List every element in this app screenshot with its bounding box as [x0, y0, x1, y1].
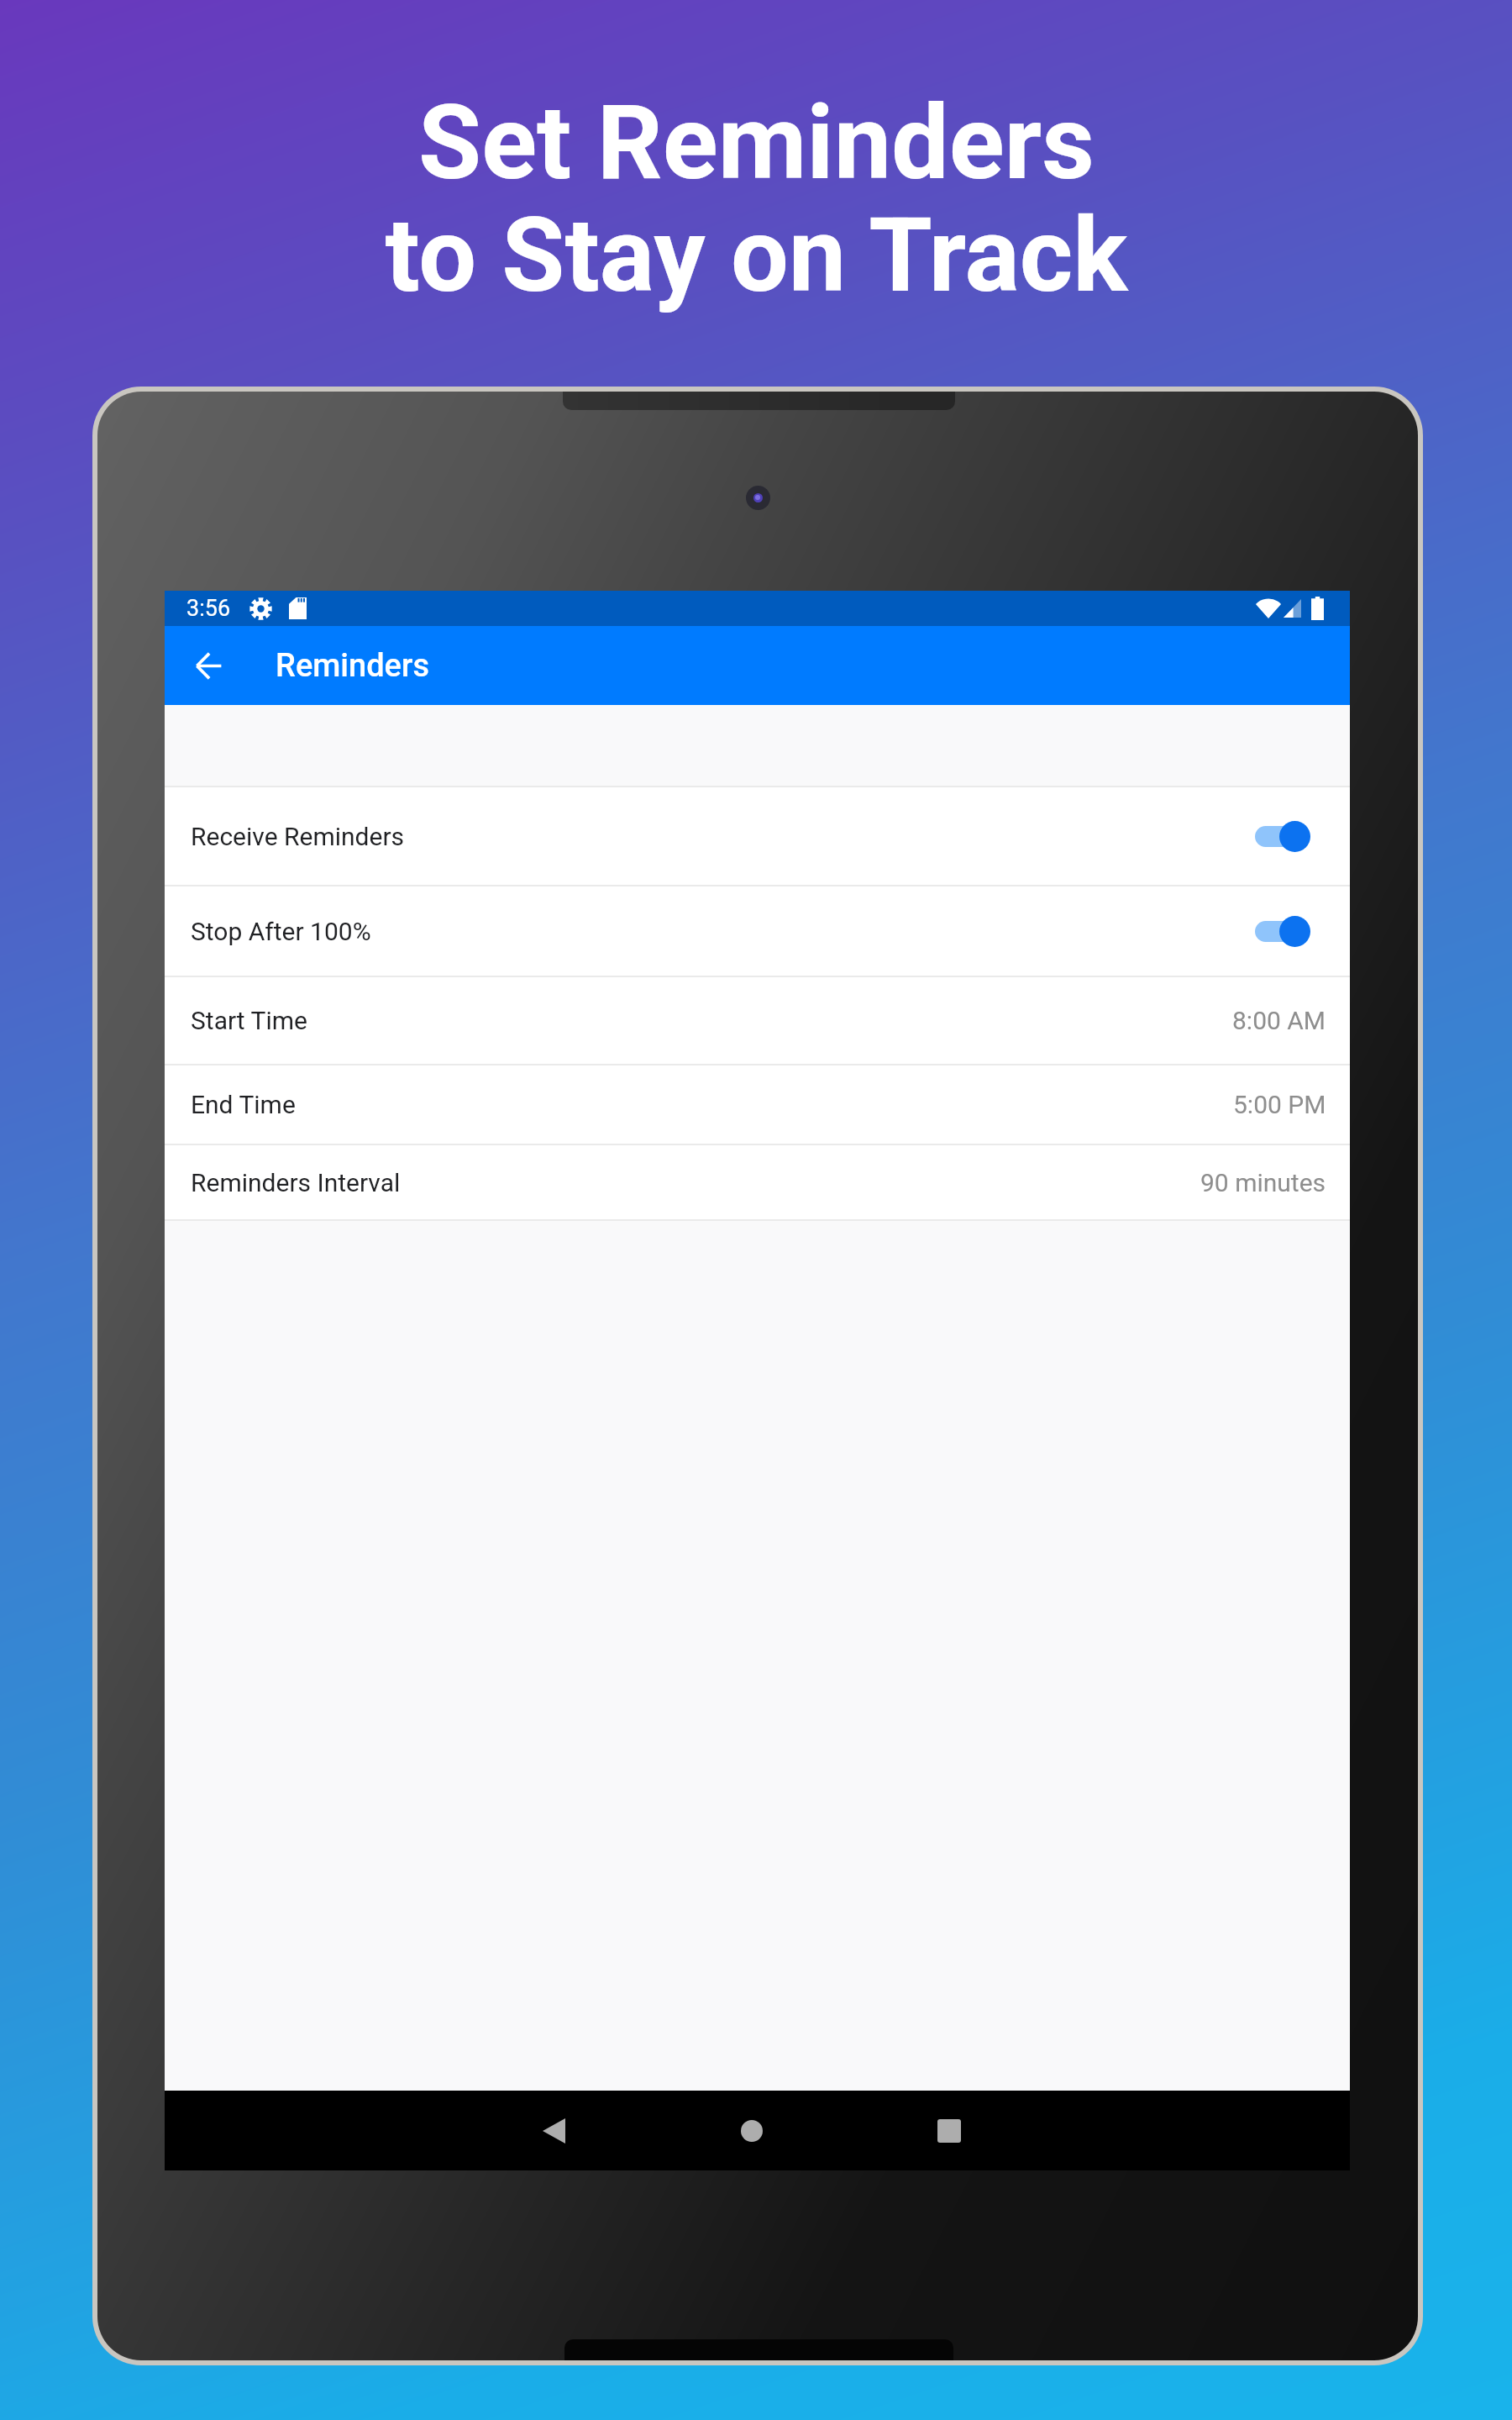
- staticText: 3:56: [186, 595, 231, 622]
- staticText: Reminders: [276, 647, 429, 685]
- button[interactable]: Back: [516, 2093, 591, 2169]
- staticText: Start Time: [191, 1006, 307, 1035]
- button[interactable]: Recents: [911, 2093, 987, 2169]
- staticText: Stop After 100%: [191, 917, 371, 946]
- button[interactable]: Toggle on: [1255, 819, 1310, 853]
- button[interactable]: Home: [714, 2093, 790, 2169]
- button[interactable]: Back: [173, 630, 244, 701]
- button[interactable]: Toggle on: [1255, 914, 1310, 948]
- staticText: 90 minutes: [1200, 1168, 1326, 1197]
- staticText: to Stay on Track: [385, 196, 1128, 316]
- staticText: Set Reminders: [418, 83, 1095, 203]
- staticText: End Time: [191, 1090, 296, 1119]
- button[interactable]: Reminders Interval: [165, 1145, 1350, 1219]
- button[interactable]: Receive Reminders: [165, 787, 1350, 885]
- staticText: 5:00 PM: [1233, 1090, 1326, 1119]
- staticText: 8:00 AM: [1232, 1006, 1326, 1035]
- staticText: Reminders Interval: [191, 1168, 401, 1197]
- button[interactable]: Start Time: [165, 977, 1350, 1064]
- staticText: Receive Reminders: [191, 822, 405, 851]
- button[interactable]: End Time: [165, 1065, 1350, 1144]
- button[interactable]: Stop After 100%: [165, 886, 1350, 976]
